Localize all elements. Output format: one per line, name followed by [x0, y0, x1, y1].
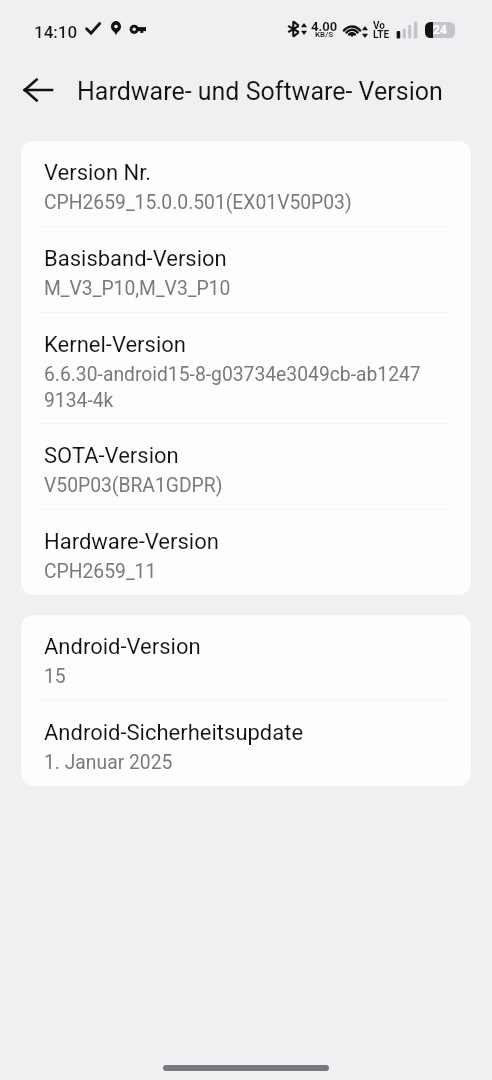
- staticText: CPH2659_11: [44, 560, 157, 583]
- button[interactable]: Version Nr.: [21, 141, 471, 226]
- staticText: 4.00: [311, 19, 338, 34]
- button[interactable]: Android-Sicherheitsupdate: [21, 701, 471, 786]
- button[interactable]: Basisband-Version: [21, 227, 471, 312]
- staticText: Hardware- und Software- Version: [77, 77, 443, 106]
- button[interactable]: Android-Version: [21, 615, 471, 700]
- staticText: 14:10: [34, 22, 78, 42]
- staticText: 6.6.30-android15-8-g03734e3049cb-ab1247 …: [44, 363, 421, 411]
- staticText: Android-Version: [44, 634, 201, 660]
- button[interactable]: Hardware-Version: [21, 510, 471, 595]
- staticText: CPH2659_15.0.0.501(EX01V50P03): [44, 191, 352, 214]
- staticText: SOTA-Version: [44, 443, 179, 469]
- staticText: Version Nr.: [44, 160, 152, 186]
- button[interactable]: Back: [14, 66, 62, 114]
- staticText: Vo: [373, 20, 385, 32]
- staticText: 1. Januar 2025: [44, 751, 173, 774]
- staticText: Hardware-Version: [44, 529, 219, 555]
- staticText: V50P03(BRA1GDPR): [44, 474, 223, 497]
- staticText: Android-Sicherheitsupdate: [44, 720, 304, 746]
- staticText: LTE: [373, 29, 390, 41]
- button[interactable]: Kernel-Version: [21, 313, 471, 423]
- staticText: 24: [433, 23, 447, 37]
- staticText: Basisband-Version: [44, 246, 227, 272]
- staticText: M_V3_P10,M_V3_P10: [44, 277, 231, 300]
- staticText: KB/S: [315, 30, 334, 39]
- button[interactable]: SOTA-Version: [21, 424, 471, 509]
- staticText: 15: [44, 665, 66, 688]
- staticText: Kernel-Version: [44, 332, 186, 358]
